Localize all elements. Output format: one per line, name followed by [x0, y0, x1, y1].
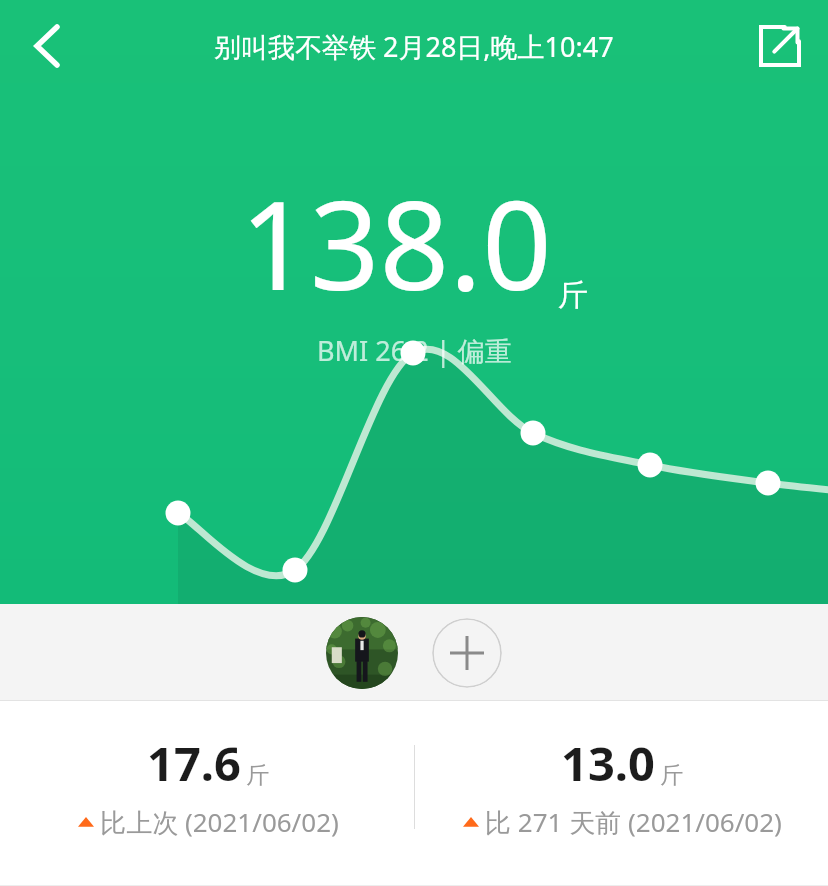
staticText: 138.0	[240, 160, 552, 326]
staticText: 17.6	[147, 731, 241, 795]
button[interactable]: 17.6	[0, 701, 414, 886]
button[interactable]: User avatar	[326, 617, 398, 689]
staticText: 斤	[246, 761, 269, 790]
staticText: 别叫我不举铁 2月28日,晚上10:47	[214, 28, 614, 65]
button[interactable]: 13.0	[414, 701, 828, 886]
staticText: 比 271 天前 (2021/06/02)	[485, 804, 782, 840]
button[interactable]: Share	[750, 16, 810, 76]
button[interactable]: Back	[14, 13, 80, 79]
staticText: 斤	[660, 761, 683, 790]
staticText: 斤	[558, 276, 588, 314]
staticText: 13.0	[561, 731, 655, 795]
staticText: 比上次 (2021/06/02)	[100, 804, 339, 840]
button[interactable]: Add user	[432, 618, 502, 688]
staticText: BMI 26.2 | 偏重	[317, 332, 512, 369]
